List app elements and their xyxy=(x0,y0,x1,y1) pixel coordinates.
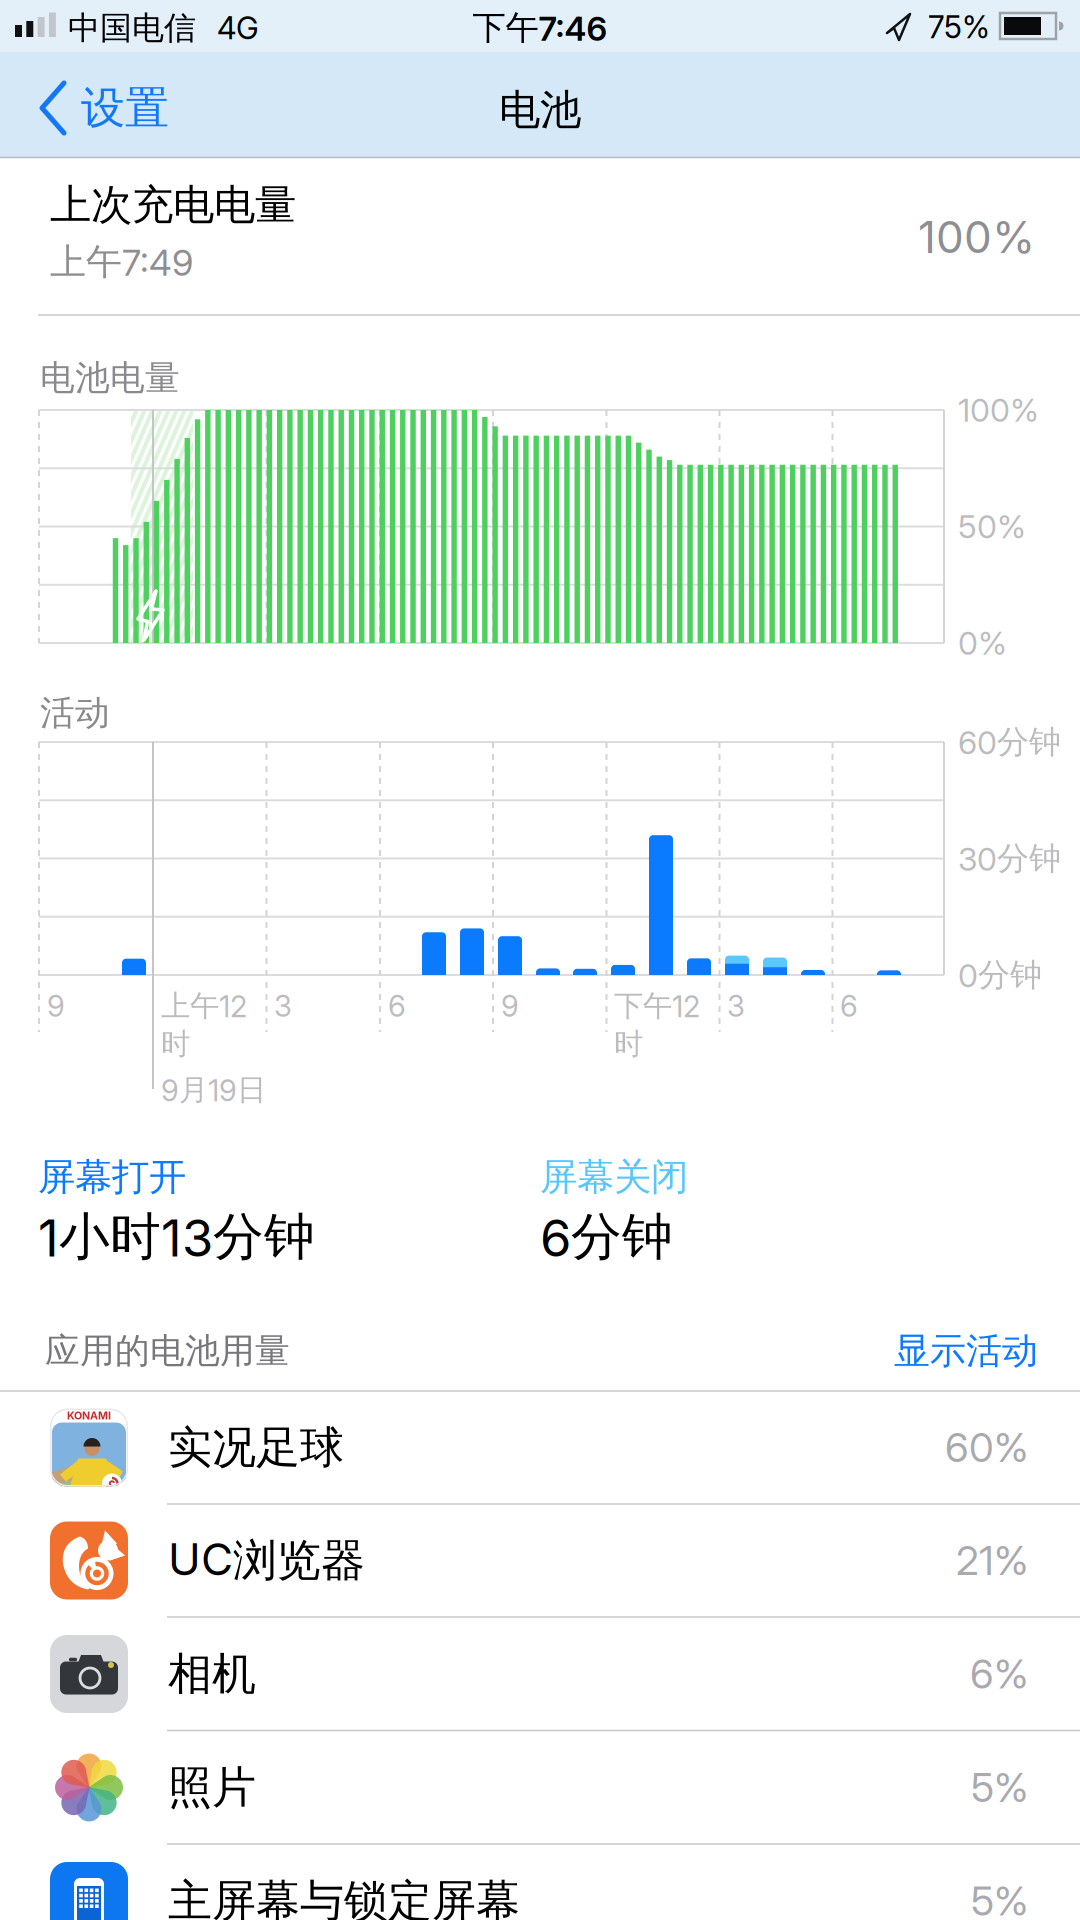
staticText: 9 xyxy=(501,989,519,1023)
staticText: 6 xyxy=(840,989,858,1023)
staticText: UC浏览器 xyxy=(168,1533,365,1588)
staticText: 3 xyxy=(727,989,745,1023)
staticText: 5% xyxy=(971,1877,1028,1920)
staticText: 5% xyxy=(971,1764,1028,1811)
staticText: 上次充电电量 xyxy=(50,180,296,230)
button[interactable]: 主屏幕与锁定屏幕 xyxy=(0,1844,1080,1920)
staticText: 4G xyxy=(217,10,259,46)
staticText: 上午12 xyxy=(161,988,247,1024)
button[interactable]: KONAMI xyxy=(0,1391,1080,1504)
staticText: 0分钟 xyxy=(958,955,1042,995)
button[interactable]: 设置 xyxy=(14,73,194,143)
staticText: 100% xyxy=(958,391,1039,429)
staticText: 6分钟 xyxy=(540,1206,673,1268)
staticText: 屏幕关闭 xyxy=(540,1154,688,1200)
staticText: 9月19日 xyxy=(161,1072,266,1108)
staticText: 60% xyxy=(945,1424,1028,1471)
staticText: 设置 xyxy=(81,81,169,135)
staticText: 30分钟 xyxy=(958,839,1061,878)
staticText: 0% xyxy=(958,624,1007,662)
staticText: 实况足球 xyxy=(168,1420,344,1474)
staticText: 6% xyxy=(970,1650,1028,1698)
staticText: 照片 xyxy=(168,1760,256,1814)
button[interactable]: 照片 xyxy=(0,1731,1080,1844)
staticText: 屏幕打开 xyxy=(38,1154,186,1200)
staticText: 主屏幕与锁定屏幕 xyxy=(168,1874,520,1920)
staticText: 上午7:49 xyxy=(50,240,193,284)
staticText: 21% xyxy=(956,1537,1028,1584)
button[interactable]: 显示活动 xyxy=(738,1316,1038,1386)
button[interactable]: UC浏览器 xyxy=(0,1504,1080,1617)
staticText: 下午7:46 xyxy=(472,7,607,48)
staticText: 50% xyxy=(958,508,1026,545)
button[interactable]: 相机 xyxy=(0,1617,1080,1730)
staticText: 9 xyxy=(47,989,65,1023)
staticText: 中国电信 xyxy=(68,8,196,48)
staticText: 时 xyxy=(161,1026,190,1062)
staticText: 6 xyxy=(388,989,406,1023)
staticText: 75% xyxy=(928,9,990,45)
staticText: 1小时13分钟 xyxy=(38,1206,315,1268)
staticText: 活动 xyxy=(40,692,110,734)
staticText: 100% xyxy=(918,211,1035,263)
staticText: 电池 xyxy=(499,85,581,135)
staticText: 相机 xyxy=(168,1647,256,1701)
staticText: 显示活动 xyxy=(894,1329,1038,1373)
staticText: 60分钟 xyxy=(958,722,1061,762)
staticText: 应用的电池用量 xyxy=(45,1330,290,1372)
staticText: 电池电量 xyxy=(40,357,180,399)
staticText: 时 xyxy=(614,1026,643,1062)
staticText: 3 xyxy=(274,989,292,1023)
staticText: 下午12 xyxy=(614,988,700,1024)
staticText: KONAMI xyxy=(67,1409,111,1422)
